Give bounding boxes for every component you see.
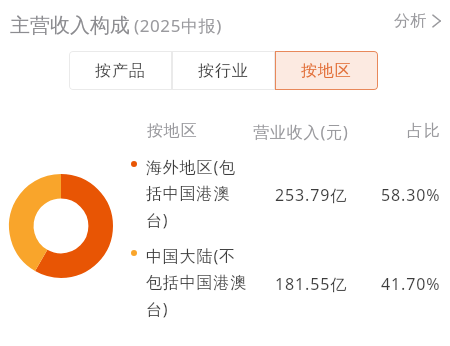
- staticText: 海外地区(包括中国港澳台): [146, 156, 249, 231]
- staticText: 按地区: [147, 121, 198, 141]
- staticText: 253.79亿: [275, 184, 347, 206]
- staticText: 58.30%: [381, 184, 441, 206]
- staticText: 营业收入(元): [253, 121, 349, 143]
- button[interactable]: 按行业: [172, 51, 275, 90]
- staticText: 181.55亿: [275, 273, 347, 295]
- staticText: 中国大陆(不包括中国港澳台): [146, 245, 249, 320]
- button[interactable]: 中国大陆(不包括中国港澳台): [0, 245, 450, 325]
- other: Open analysis: [432, 14, 441, 28]
- button[interactable]: 按产品: [69, 51, 172, 90]
- staticText: 按产品: [95, 61, 146, 81]
- button[interactable]: 海外地区(包括中国港澳台): [0, 156, 450, 236]
- staticText: 按地区: [301, 61, 352, 81]
- button[interactable]: 分析: [392, 8, 443, 34]
- staticText: 按行业: [198, 61, 249, 81]
- staticText: 分析: [394, 11, 427, 31]
- other: Revenue composition donut chart: [0, 0, 450, 346]
- button[interactable]: 按地区: [275, 51, 378, 90]
- staticText: 主营收入构成: [10, 13, 130, 38]
- staticText: 41.70%: [381, 273, 441, 295]
- staticText: 占比: [407, 121, 441, 141]
- staticText: (2025中报): [134, 14, 222, 37]
